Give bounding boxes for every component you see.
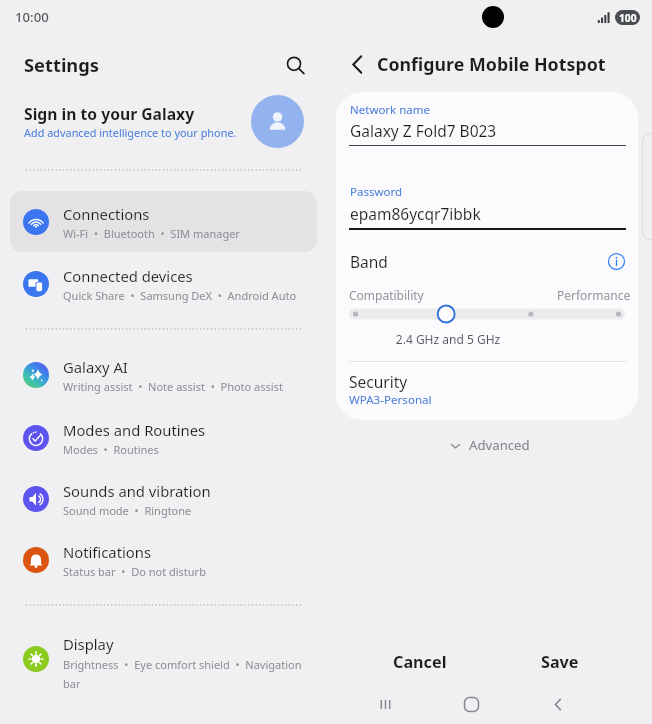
button[interactable]: Cancel	[356, 640, 484, 684]
button[interactable]: Connected devices	[10, 253, 317, 314]
staticText: Brightness • Eye comfort shield • Naviga…	[63, 657, 313, 691]
staticText: WPA3-Personal	[349, 392, 432, 408]
button[interactable]	[349, 306, 625, 322]
button[interactable]: Save	[496, 640, 624, 684]
button[interactable]: Band information	[604, 249, 628, 273]
staticText: Modes • Routines	[63, 442, 159, 457]
staticText: Settings	[24, 52, 99, 77]
staticText: Writing assist • Note assist • Photo ass…	[63, 379, 283, 394]
staticText: epam86ycqr7ibbk	[350, 203, 481, 224]
staticText: Sign in to your Galaxy	[24, 103, 195, 124]
staticText: Add advanced intelligence to your phone.	[24, 125, 237, 140]
button[interactable]: Connections	[10, 191, 317, 252]
staticText: Network name	[350, 102, 431, 118]
staticText: Performance	[557, 287, 631, 303]
button[interactable]: Advanced	[449, 434, 530, 456]
staticText: Connected devices	[63, 266, 193, 286]
staticText: Modes and Routines	[63, 420, 206, 440]
staticText: Sound mode • Ringtone	[63, 503, 192, 518]
button[interactable]: Recent apps	[342, 688, 428, 720]
button[interactable]: Back	[338, 45, 376, 83]
staticText: Wi-Fi • Bluetooth • SIM manager	[63, 226, 240, 241]
staticText: 100	[619, 11, 637, 25]
button[interactable]: Modes and Routines	[10, 407, 317, 468]
button[interactable]: Sign in to your Galaxy	[10, 93, 316, 151]
button[interactable]: Display	[10, 621, 317, 701]
button[interactable]: Home	[428, 688, 515, 720]
staticText: Security	[349, 371, 408, 392]
staticText: Status bar • Do not disturb	[63, 564, 206, 579]
staticText: Galaxy Z Fold7 B023	[350, 120, 497, 141]
button[interactable]: Notifications	[10, 529, 317, 590]
staticText: Connections	[63, 204, 150, 224]
staticText: Sounds and vibration	[63, 481, 211, 501]
staticText: Display	[63, 634, 114, 654]
staticText: Configure Mobile Hotspot	[377, 52, 606, 76]
staticText: 10:00	[15, 8, 49, 26]
staticText: Quick Share • Samsung DeX • Android Auto	[63, 288, 297, 303]
staticText: Band	[350, 251, 388, 272]
staticText: Notifications	[63, 542, 152, 562]
staticText: Save	[541, 651, 579, 673]
button[interactable]: Galaxy AI	[10, 344, 317, 405]
button[interactable]: Sounds and vibration	[10, 468, 317, 529]
staticText: Compatibility	[349, 287, 424, 303]
button[interactable]: Search	[276, 46, 314, 84]
staticText: Galaxy AI	[63, 357, 128, 377]
button[interactable]: Back	[515, 688, 602, 720]
staticText: 2.4 GHz and 5 GHz	[358, 331, 538, 347]
staticText: Advanced	[469, 436, 530, 454]
staticText: Password	[350, 184, 403, 200]
staticText: Cancel	[393, 651, 447, 673]
